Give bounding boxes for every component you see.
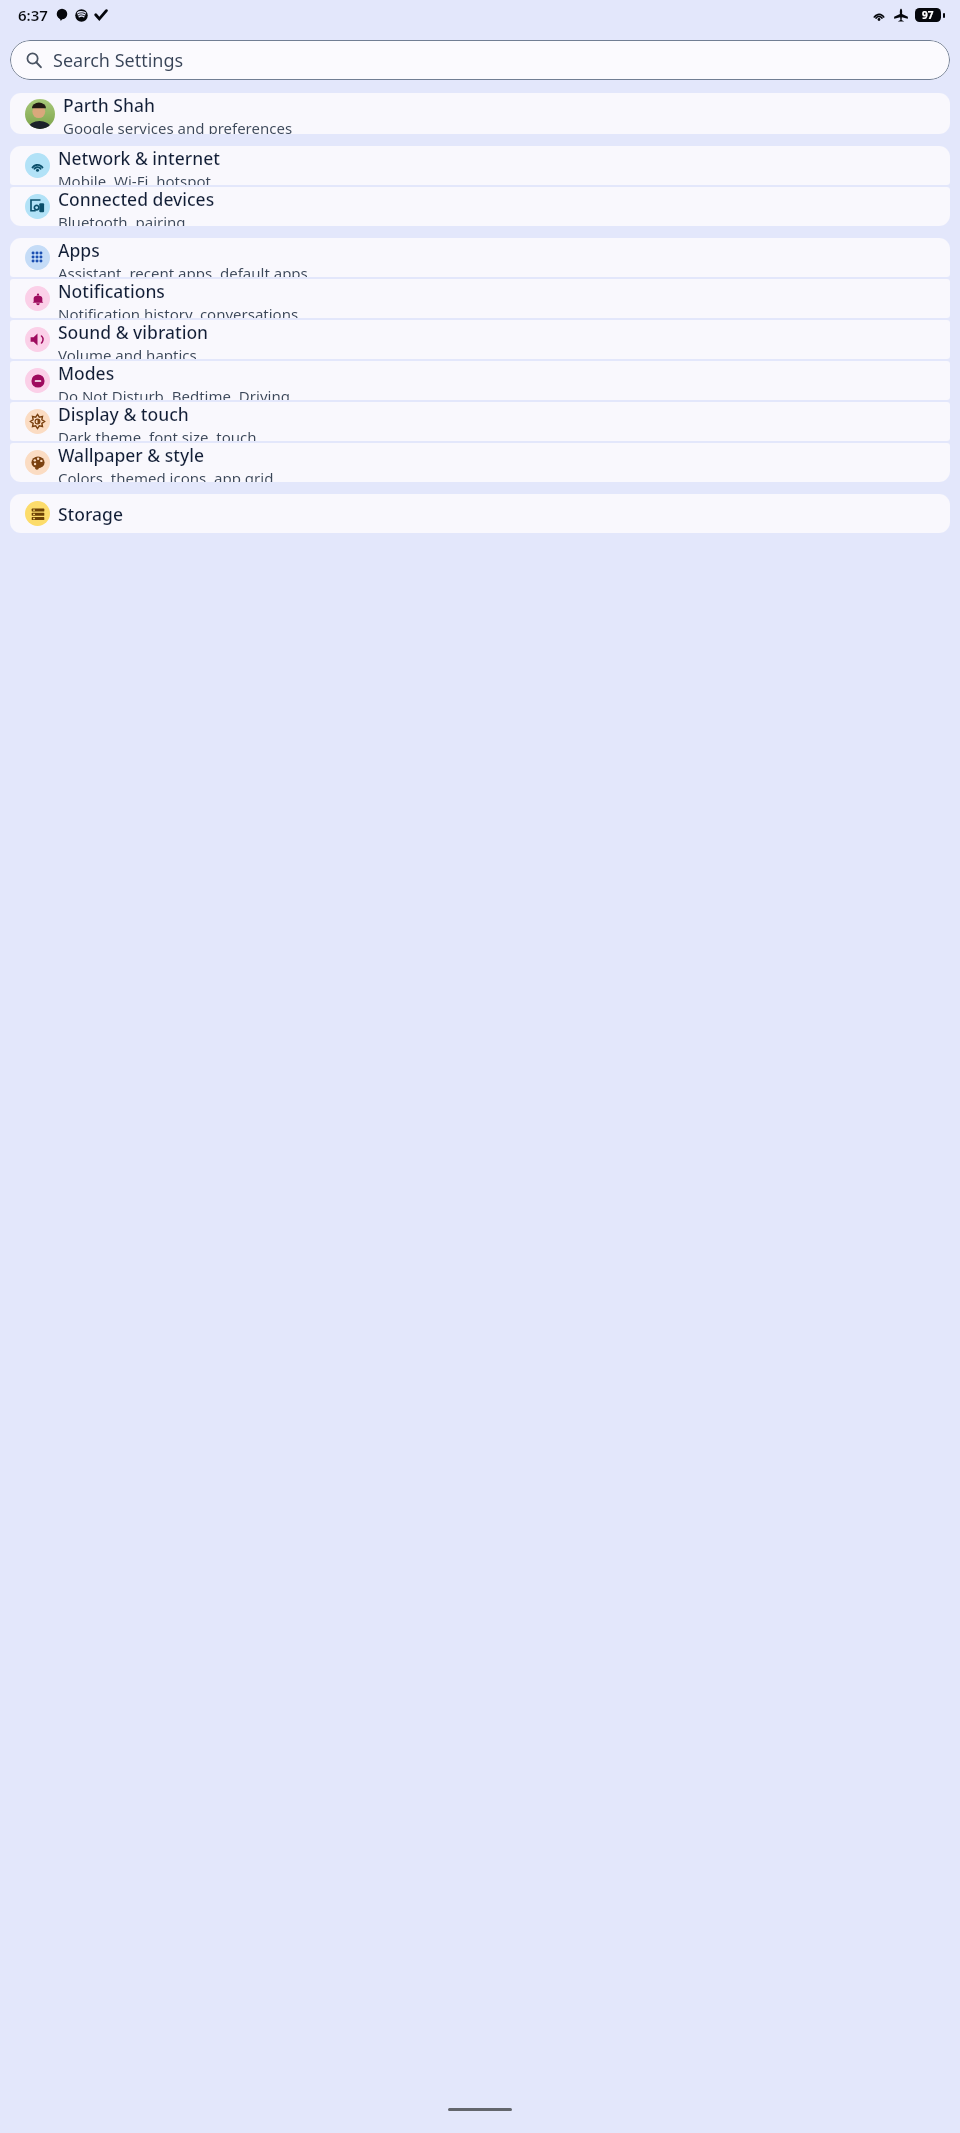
staticText: Sound & vibration [58, 320, 209, 344]
staticText: Notification history, conversations [58, 304, 299, 318]
button[interactable]: Wallpaper & style [10, 443, 950, 482]
staticText: Display & touch [58, 402, 189, 426]
staticText: Storage [58, 502, 123, 526]
staticText: Dark theme, font size, touch [58, 427, 257, 441]
staticText: 6:37 [18, 5, 48, 25]
staticText: Modes [58, 361, 115, 385]
staticText: Assistant, recent apps, default apps [58, 263, 308, 277]
button[interactable]: Network & internet [10, 146, 950, 185]
staticText: Mobile, Wi-Fi, hotspot [58, 171, 211, 185]
button[interactable]: Parth Shah [10, 93, 950, 134]
staticText: Search Settings [53, 48, 184, 73]
staticText: Apps [58, 238, 100, 262]
button[interactable]: Connected devices [10, 187, 950, 226]
button[interactable]: Storage [10, 494, 950, 533]
button[interactable]: Search Settings [10, 40, 950, 80]
staticText: Bluetooth, pairing [58, 212, 186, 226]
staticText: Network & internet [58, 146, 220, 170]
button[interactable]: Modes [10, 361, 950, 400]
button[interactable]: Apps [10, 238, 950, 277]
staticText: Parth Shah [63, 93, 155, 117]
button[interactable]: Display & touch [10, 402, 950, 441]
staticText: Connected devices [58, 187, 215, 211]
button[interactable]: Notifications [10, 279, 950, 318]
staticText: Colors, themed icons, app grid [58, 468, 274, 482]
staticText: Do Not Disturb, Bedtime, Driving [58, 386, 290, 400]
staticText: 97 [922, 8, 934, 22]
staticText: Volume and haptics [58, 345, 197, 359]
staticText: Wallpaper & style [58, 443, 204, 467]
staticText: Notifications [58, 279, 165, 303]
staticText: Google services and preferences [63, 118, 293, 134]
button[interactable]: Sound & vibration [10, 320, 950, 359]
